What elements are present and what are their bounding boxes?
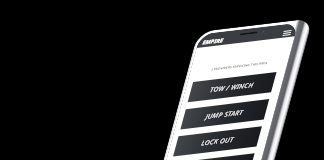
staticText: LOCK OUT [197, 121, 238, 160]
button[interactable]: Menu [281, 27, 293, 39]
staticText: 3 PROVIDERS SERVICING THIS AREA [209, 37, 269, 96]
button[interactable]: FUEL [159, 118, 262, 160]
staticText: EMPIRE [199, 27, 227, 54]
button[interactable]: LOCK OUT [165, 91, 270, 160]
button[interactable]: JUMP START [173, 64, 277, 160]
staticText: TOW / WINCH [206, 62, 258, 113]
staticText: FUEL [198, 156, 223, 160]
button[interactable]: TOW / WINCH [180, 36, 284, 138]
staticText: JUMP START [201, 92, 248, 137]
